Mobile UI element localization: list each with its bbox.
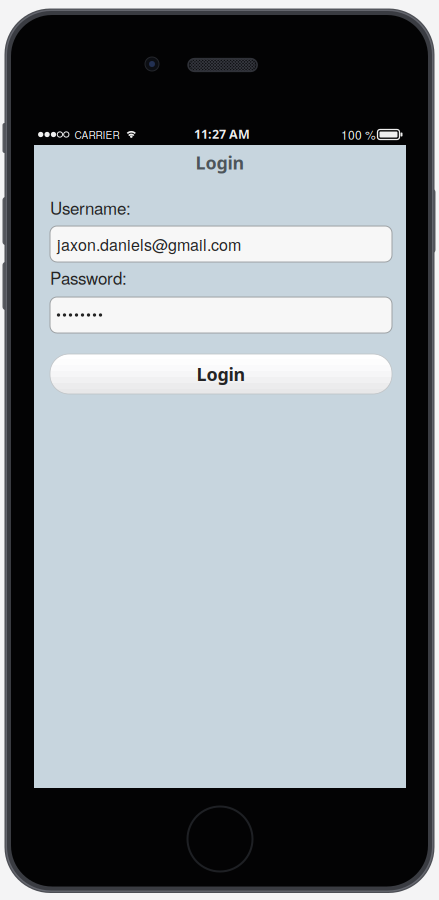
staticText: Username: xyxy=(50,195,131,220)
staticText: 11:27 AM xyxy=(194,125,250,143)
staticText: Password: xyxy=(50,265,127,290)
staticText: 100 % xyxy=(341,126,376,143)
staticText: Login xyxy=(196,362,245,386)
staticText: CARRIER xyxy=(74,127,119,142)
staticText: jaxon.daniels@gmail.com xyxy=(57,232,241,255)
staticText: Login xyxy=(195,150,244,175)
button[interactable]: Login xyxy=(50,354,392,394)
